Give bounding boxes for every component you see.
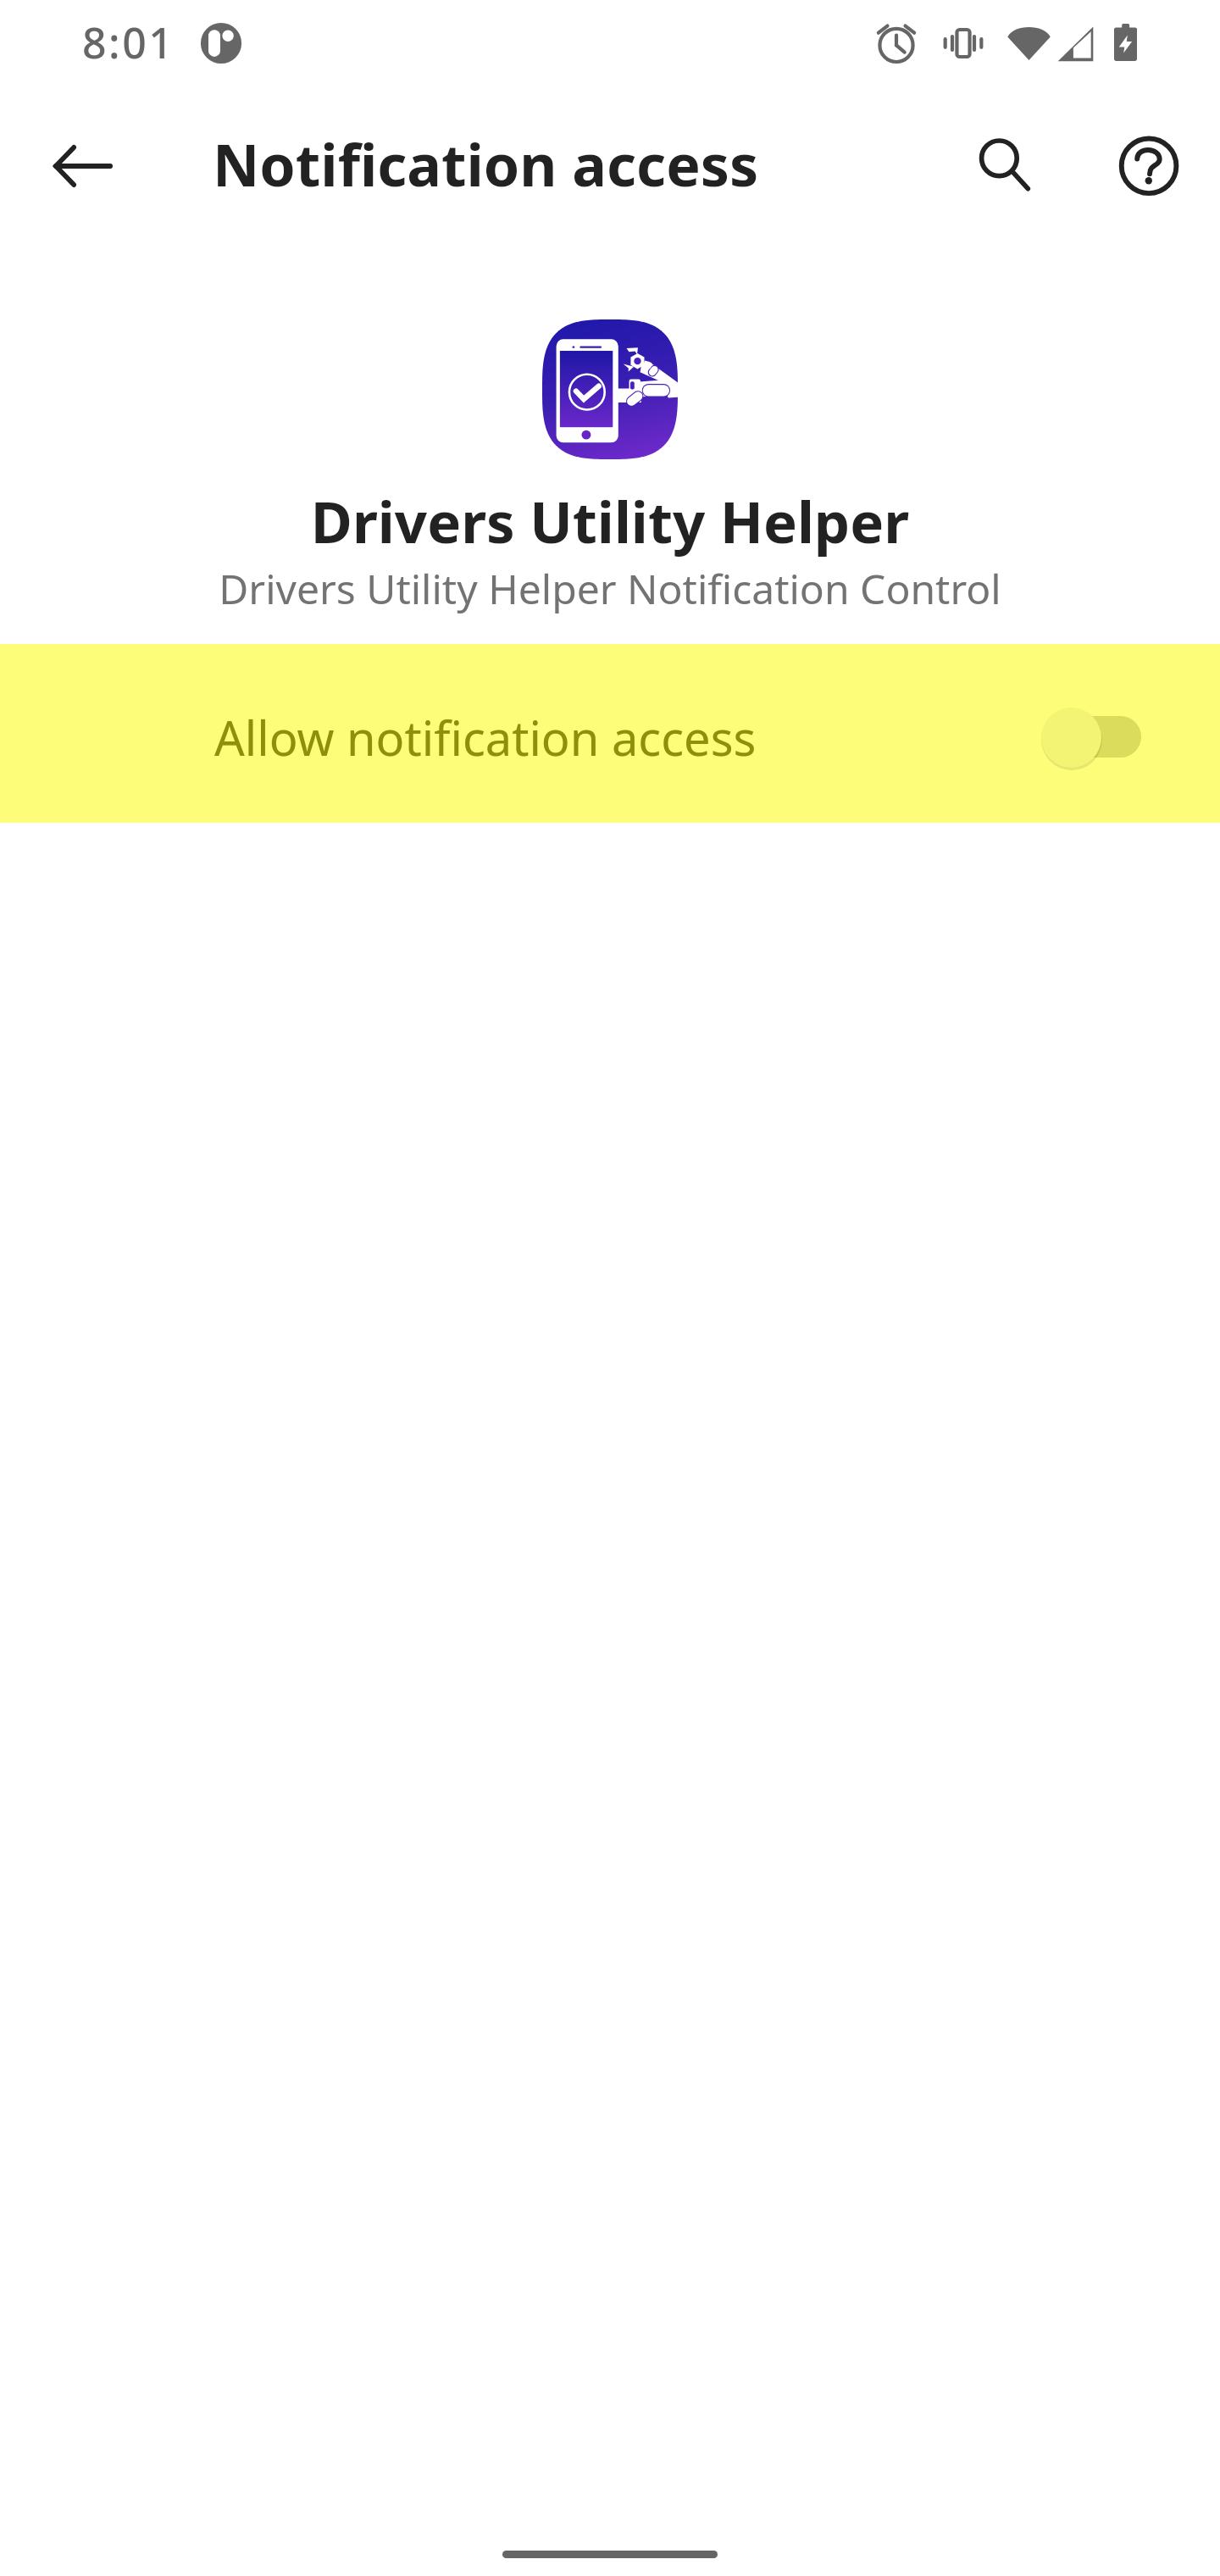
staticText: Allow notification access [214, 705, 757, 769]
staticText: Notification access [213, 125, 759, 203]
button[interactable]: Search [958, 119, 1051, 213]
staticText: Drivers Utility Helper Notification Cont… [0, 561, 1220, 616]
staticText: Drivers Utility Helper [0, 482, 1220, 559]
button[interactable]: Back [36, 119, 130, 213]
button[interactable]: Allow notification access [0, 644, 1220, 823]
staticText: 8:01 [82, 14, 175, 71]
button[interactable]: Help [1102, 119, 1195, 213]
